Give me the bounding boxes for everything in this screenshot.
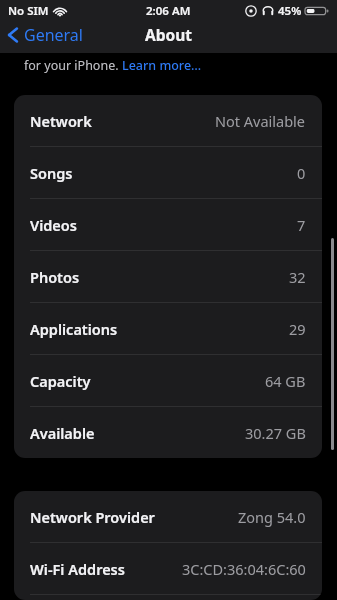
staticText: General (24, 24, 83, 46)
staticText: Songs (30, 163, 73, 183)
staticText: 7 (297, 215, 306, 235)
staticText: No SIM (8, 3, 49, 19)
button[interactable]: Songs (14, 147, 322, 198)
button[interactable]: Learn more… (122, 57, 202, 74)
button[interactable]: Back to General (6, 24, 83, 46)
button[interactable]: Bluetooth (14, 595, 322, 600)
staticText: Not Available (215, 111, 306, 131)
button[interactable]: Photos (14, 251, 322, 302)
button[interactable]: Capacity (14, 355, 322, 406)
staticText: for your iPhone. (24, 57, 122, 74)
staticText: Network Provider (30, 507, 155, 527)
button[interactable]: Videos (14, 199, 322, 250)
button[interactable]: Wi-Fi Address (14, 543, 322, 594)
staticText: 32 (289, 267, 306, 287)
staticText: Photos (30, 267, 80, 287)
staticText: Learn more… (122, 57, 202, 74)
staticText: Available (30, 423, 95, 443)
staticText: 3C:CD:36:04:6C:60 (182, 559, 306, 579)
staticText: Videos (30, 215, 77, 235)
staticText: 29 (289, 319, 306, 339)
staticText: Wi-Fi Address (30, 559, 125, 579)
staticText: 45% (278, 3, 302, 19)
staticText: Applications (30, 319, 118, 339)
button[interactable]: Network Provider (14, 491, 322, 542)
staticText: About (145, 24, 193, 45)
button[interactable]: Available (14, 407, 322, 458)
button[interactable]: Applications (14, 303, 322, 354)
staticText: 2:06 AM (146, 3, 191, 19)
staticText: Network (30, 111, 92, 131)
staticText: 30.27 GB (245, 423, 306, 443)
staticText: 64 GB (265, 371, 306, 391)
staticText: Capacity (30, 371, 91, 391)
button[interactable]: Network (14, 95, 322, 146)
staticText: Zong 54.0 (238, 507, 306, 527)
staticText: 0 (297, 163, 306, 183)
